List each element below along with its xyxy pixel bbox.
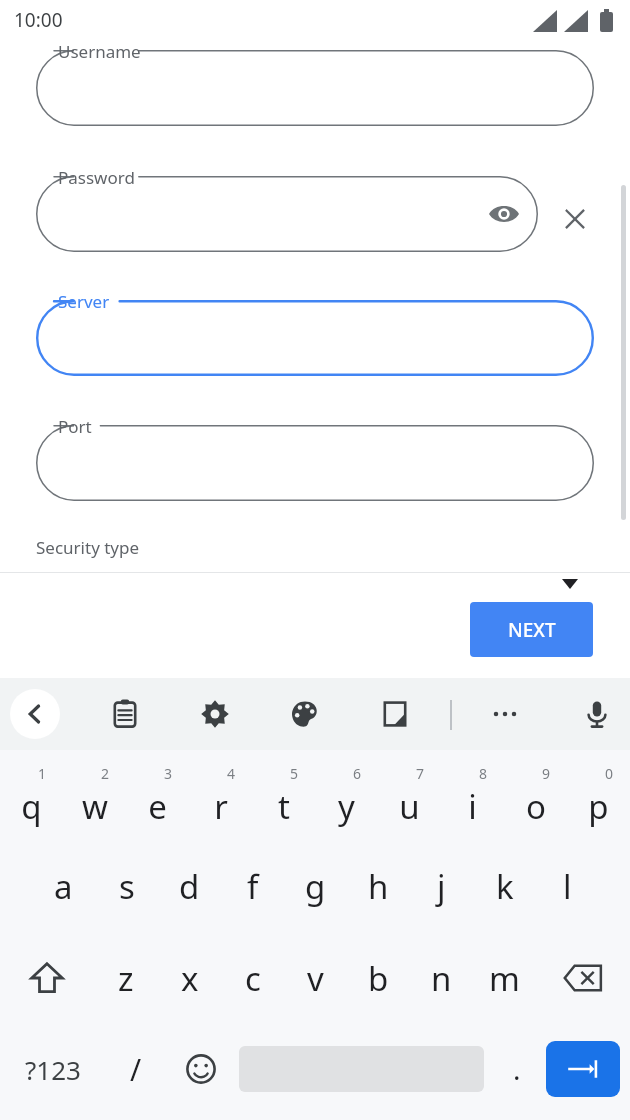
button[interactable]: a (31, 840, 95, 932)
button[interactable]: k (473, 840, 536, 932)
staticText: e (148, 784, 167, 829)
button[interactable]: d (158, 840, 221, 932)
staticText: p (588, 784, 609, 829)
staticText: 10:00 (14, 7, 63, 33)
button[interactable]: Server (36, 300, 594, 376)
button[interactable]: Themes (280, 689, 330, 739)
button[interactable]: z (94, 932, 158, 1024)
button[interactable]: Shift (0, 932, 94, 1024)
staticText: Server (58, 290, 110, 313)
staticText: Security type (36, 536, 140, 559)
staticText: 4 (227, 764, 236, 783)
staticText: a (54, 864, 73, 909)
staticText: g (305, 864, 326, 909)
staticText: 6 (353, 764, 362, 783)
staticText: w (82, 784, 108, 829)
staticText: y (338, 784, 355, 829)
staticText: 0 (605, 764, 614, 783)
button[interactable]: 0 (567, 760, 630, 840)
button[interactable]: Backspace (536, 932, 630, 1024)
button[interactable]: Clipboard (100, 689, 150, 739)
staticText: c (245, 956, 261, 1001)
button[interactable]: 9 (504, 760, 567, 840)
button[interactable]: f (221, 840, 284, 932)
staticText: 8 (479, 764, 488, 783)
staticText: o (526, 784, 546, 829)
staticText: j (437, 864, 446, 909)
staticText: k (496, 864, 514, 909)
button[interactable]: Emoji (167, 1024, 235, 1114)
button[interactable]: Show options (548, 570, 592, 598)
button[interactable]: g (284, 840, 347, 932)
staticText: i (468, 784, 477, 829)
button[interactable]: Port (36, 425, 594, 501)
staticText: z (118, 956, 134, 1001)
staticText: . (513, 1050, 521, 1088)
button[interactable]: j (410, 840, 473, 932)
button[interactable]: h (347, 840, 410, 932)
staticText: m (489, 956, 520, 1001)
button[interactable]: 3 (126, 760, 189, 840)
staticText: b (368, 956, 389, 1001)
button[interactable]: 6 (315, 760, 378, 840)
button[interactable]: 5 (252, 760, 315, 840)
staticText: 3 (164, 764, 173, 783)
staticText: / (130, 1049, 142, 1090)
staticText: Username (58, 40, 141, 63)
button[interactable]: l (536, 840, 599, 932)
staticText: v (307, 956, 324, 1001)
staticText: t (278, 784, 290, 829)
button[interactable]: v (284, 932, 347, 1024)
button[interactable]: Show password (480, 190, 528, 238)
button[interactable]: ?123 (0, 1024, 105, 1114)
button[interactable]: x (158, 932, 221, 1024)
staticText: 1 (38, 764, 47, 783)
button[interactable]: Voice input (572, 689, 622, 739)
staticText: 5 (290, 764, 299, 783)
staticText: s (119, 864, 135, 909)
button[interactable]: Back (10, 689, 60, 739)
button[interactable]: More options (480, 689, 530, 739)
button[interactable]: c (221, 932, 284, 1024)
staticText: l (563, 864, 572, 909)
staticText: 7 (416, 764, 425, 783)
button[interactable]: 7 (378, 760, 441, 840)
button[interactable]: Settings (190, 689, 240, 739)
button[interactable]: b (347, 932, 410, 1024)
staticText: n (431, 956, 452, 1001)
staticText: q (21, 784, 42, 829)
button[interactable]: 2 (63, 760, 126, 840)
button[interactable]: 8 (441, 760, 504, 840)
button[interactable]: Password (36, 176, 538, 252)
staticText: f (247, 864, 259, 909)
staticText: Password (58, 166, 135, 189)
button[interactable]: n (410, 932, 473, 1024)
staticText: u (399, 784, 420, 829)
button[interactable]: s (95, 840, 158, 932)
button[interactable]: / (105, 1024, 167, 1114)
button[interactable]: Clear password (548, 192, 602, 246)
button[interactable]: m (473, 932, 536, 1024)
staticText: Port (58, 415, 92, 438)
staticText: d (179, 864, 200, 909)
staticText: NEXT (508, 617, 556, 643)
staticText: 9 (542, 764, 551, 783)
button[interactable]: Next field (546, 1041, 620, 1097)
button[interactable]: Username (36, 50, 594, 126)
staticText: h (368, 864, 389, 909)
staticText: x (181, 956, 199, 1001)
staticText: ?123 (25, 1052, 81, 1087)
staticText: 2 (101, 764, 110, 783)
button[interactable]: . (488, 1024, 546, 1114)
button[interactable]: 1 (0, 760, 63, 840)
staticText: r (214, 784, 228, 829)
button[interactable]: Stickers (370, 689, 420, 739)
button[interactable]: 4 (189, 760, 252, 840)
button[interactable]: NEXT (470, 602, 593, 657)
